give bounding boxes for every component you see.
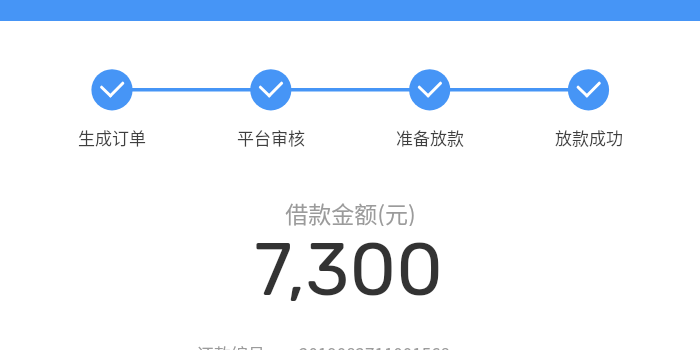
- button[interactable]: 放款成功: [539, 124, 639, 150]
- staticText: 放款成功: [555, 125, 623, 150]
- button[interactable]: 生成订单: [62, 124, 162, 150]
- staticText: 准备放款: [396, 125, 464, 150]
- staticText: 还款编号: [197, 341, 265, 350]
- staticText: 生成订单: [78, 125, 146, 150]
- staticText: 7,300: [254, 226, 443, 312]
- button[interactable]: 准备放款: [380, 124, 480, 150]
- staticText: 借款金额(元): [285, 196, 416, 226]
- staticText: 平台审核: [237, 125, 305, 150]
- button[interactable]: 平台审核: [221, 124, 321, 150]
- other: Loan progress: all four steps completed: [0, 0, 700, 350]
- staticText: 2019082711001568: [299, 341, 450, 350]
- button[interactable]: 还款编号: [0, 341, 673, 350]
